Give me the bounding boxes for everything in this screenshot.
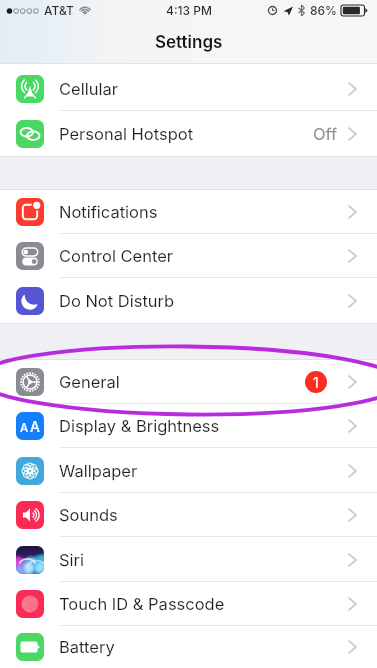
staticText: AT&T (44, 3, 74, 18)
button[interactable]: Cellular (0, 67, 377, 111)
button[interactable]: Sounds (0, 493, 377, 537)
staticText: Touch ID & Passcode (59, 594, 225, 614)
staticText: 4:13 PM (166, 3, 212, 18)
button[interactable]: Personal Hotspot (0, 111, 377, 156)
button[interactable]: Battery (0, 626, 377, 668)
staticText: Personal Hotspot (59, 124, 194, 144)
staticText: Cellular (59, 79, 118, 99)
staticText: Sounds (59, 505, 118, 525)
staticText: Wallpaper (59, 461, 138, 481)
staticText: General (59, 372, 120, 392)
staticText: Settings (155, 32, 223, 53)
button[interactable]: General (0, 360, 377, 404)
button[interactable]: A (0, 404, 377, 448)
button[interactable]: Touch ID & Passcode (0, 582, 377, 626)
staticText: Notifications (59, 202, 158, 222)
staticText: Display & Brightness (59, 416, 220, 436)
button[interactable]: Wallpaper (0, 448, 377, 493)
staticText: Control Center (59, 246, 174, 266)
staticText: Do Not Disturb (59, 291, 175, 311)
button[interactable]: Siri (0, 537, 377, 582)
staticText: Off (313, 124, 338, 144)
staticText: Siri (59, 550, 85, 570)
button[interactable]: Control Center (0, 234, 377, 278)
staticText: A (30, 418, 40, 435)
button[interactable]: Notifications (0, 190, 377, 234)
staticText: 1 (313, 374, 319, 391)
staticText: A (20, 421, 29, 435)
staticText: 86% (310, 3, 338, 18)
button[interactable]: Do Not Disturb (0, 278, 377, 323)
staticText: Battery (59, 637, 115, 657)
